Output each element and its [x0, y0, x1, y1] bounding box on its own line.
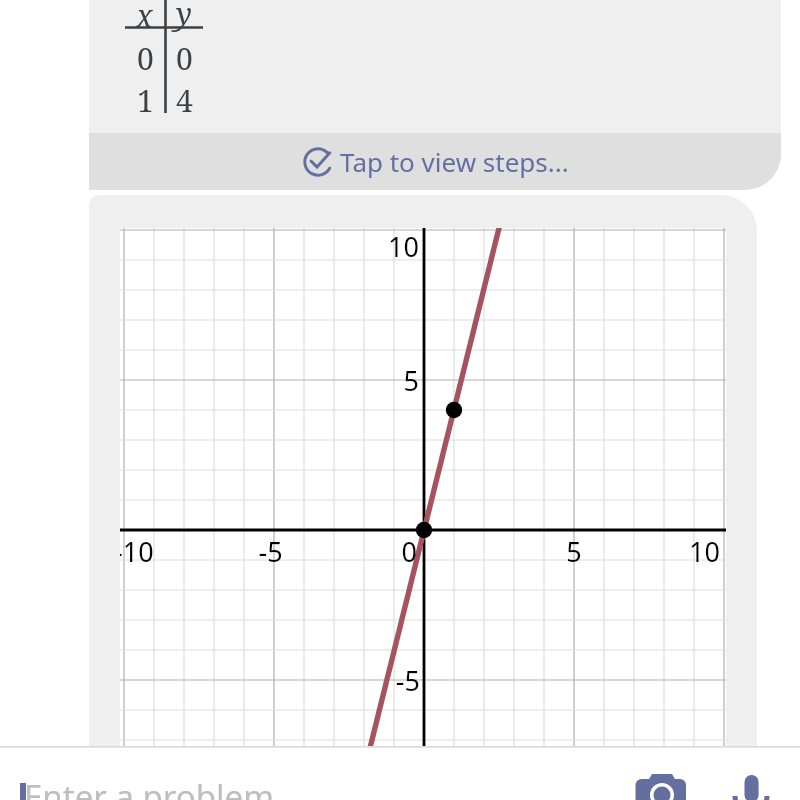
staticText: 1	[137, 80, 154, 121]
staticText: 5	[566, 533, 582, 570]
button[interactable]: Tap to view steps...	[89, 133, 781, 190]
staticText: Enter a problem	[24, 774, 275, 800]
staticText: x	[136, 0, 153, 36]
staticText: y	[176, 0, 192, 34]
staticText: 4	[176, 80, 193, 121]
staticText: 5	[403, 362, 419, 399]
staticText: -5	[395, 662, 420, 699]
staticText: -5	[258, 533, 283, 570]
staticText: 0	[176, 38, 193, 79]
button[interactable]: Scan with camera	[630, 770, 694, 800]
staticText: 0	[137, 38, 154, 79]
button[interactable]: Voice input	[726, 768, 780, 800]
staticText: 0	[401, 533, 417, 570]
staticText: 10	[388, 228, 419, 265]
staticText: 10	[689, 533, 720, 570]
button[interactable]: x	[89, 0, 781, 190]
button[interactable]: Enter a problem	[0, 749, 600, 800]
staticText: -10	[120, 533, 154, 570]
button[interactable]: -10	[89, 195, 757, 746]
staticText: Tap to view steps...	[340, 144, 569, 179]
